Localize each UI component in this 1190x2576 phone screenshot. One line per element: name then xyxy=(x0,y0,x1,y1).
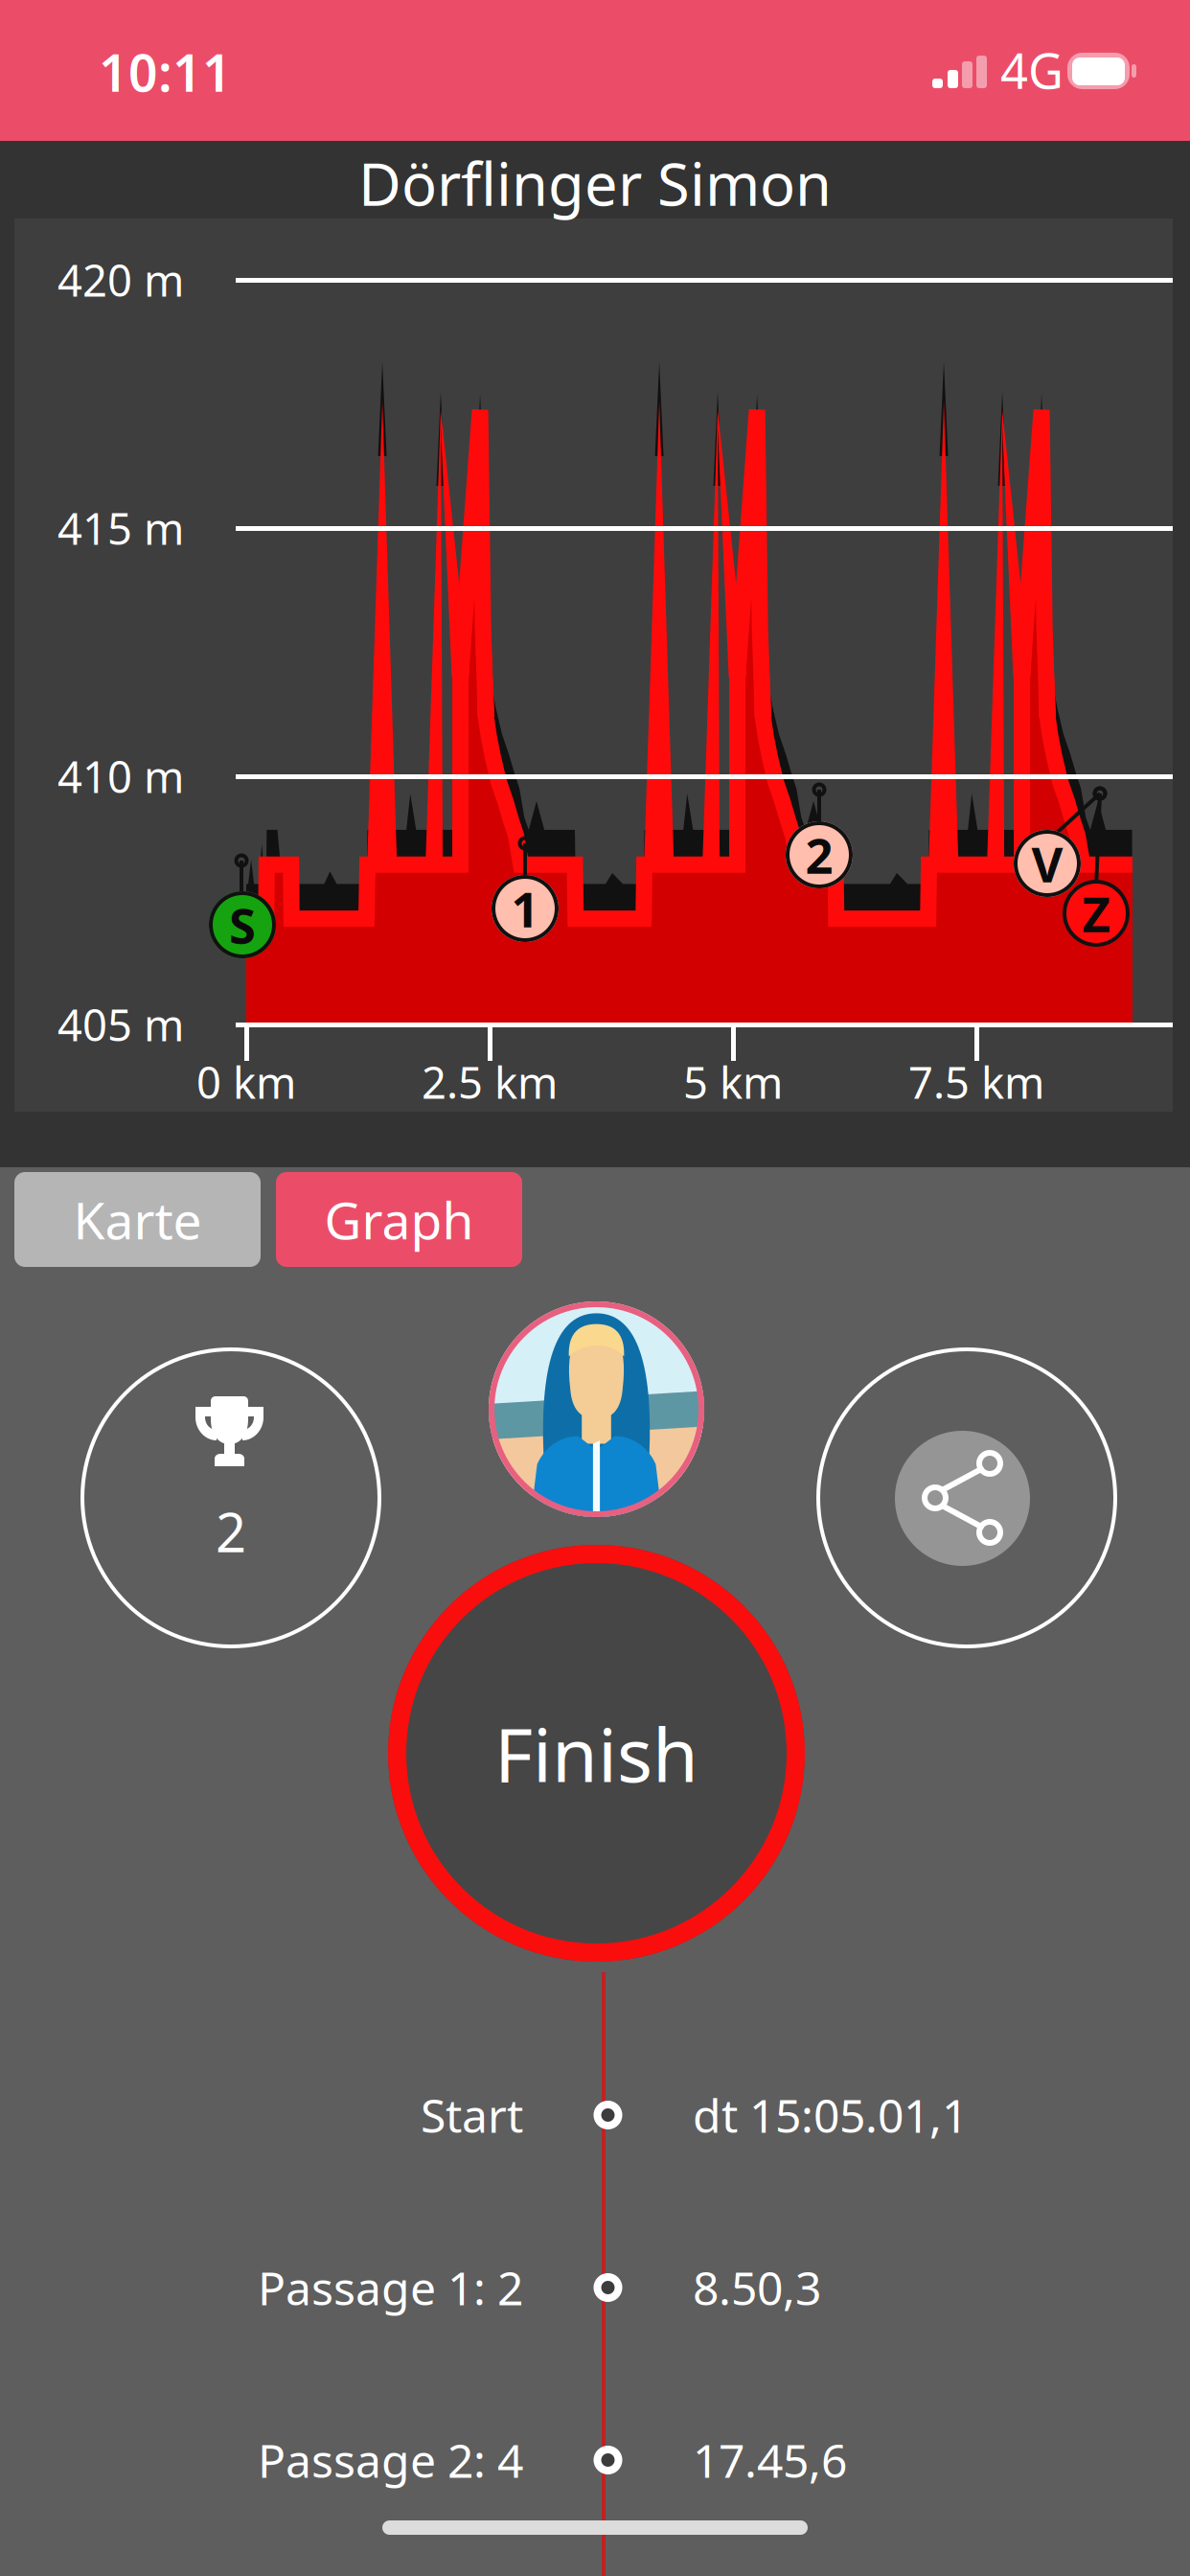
staticText: 420 m xyxy=(57,251,184,309)
button[interactable]: Finish xyxy=(388,1545,805,1962)
button[interactable]: Dörflinger Simon xyxy=(0,146,1190,220)
staticText: 405 m xyxy=(57,996,184,1053)
staticText: Graph xyxy=(324,1186,474,1253)
staticText: Start xyxy=(421,2084,523,2146)
button[interactable]: Share xyxy=(816,1347,1117,1648)
staticText: 8.50,3 xyxy=(693,2257,821,2318)
staticText: 5 km xyxy=(683,1053,783,1111)
staticText: 7.5 km xyxy=(908,1053,1044,1111)
button[interactable]: Graph xyxy=(276,1172,522,1267)
staticText: dt 15:05.01,1 xyxy=(693,2084,968,2146)
staticText: Finish xyxy=(494,1704,698,1803)
staticText: V xyxy=(1031,831,1063,896)
staticText: 17.45,6 xyxy=(693,2429,847,2491)
staticText: Z xyxy=(1082,881,1110,946)
staticText: 415 m xyxy=(57,499,184,557)
staticText: Passage 2: 4 xyxy=(258,2429,523,2491)
staticText: Karte xyxy=(73,1186,202,1253)
staticText: Passage 1: 2 xyxy=(258,2257,523,2318)
staticText: 4G xyxy=(1000,38,1064,102)
staticText: 2.5 km xyxy=(422,1053,558,1111)
staticText: 2 xyxy=(805,823,833,887)
staticText: Dörflinger Simon xyxy=(358,144,832,222)
staticText: 410 m xyxy=(57,747,184,805)
staticText: 0 km xyxy=(196,1053,296,1111)
staticText: S xyxy=(229,893,256,957)
staticText: 1 xyxy=(511,876,539,941)
button[interactable]: Karte xyxy=(14,1172,261,1267)
staticText: 10:11 xyxy=(99,38,232,106)
staticText: 2 xyxy=(216,1496,246,1567)
button[interactable]: Rank 2 xyxy=(80,1347,381,1648)
